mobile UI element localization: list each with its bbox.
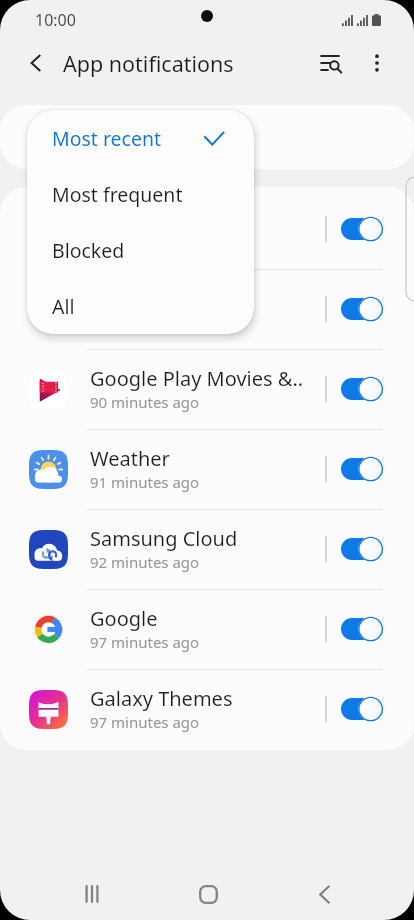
button[interactable]: Google xyxy=(0,589,414,669)
staticText: 10:00 xyxy=(35,9,76,31)
staticText: 90 minutes ago xyxy=(90,392,200,412)
staticText: 97 minutes ago xyxy=(90,632,200,652)
button[interactable]: Most recent xyxy=(27,110,254,166)
staticText: Blocked xyxy=(52,237,125,264)
button[interactable]: Samsung Cloud xyxy=(0,509,414,589)
staticText: 92 minutes ago xyxy=(90,552,200,572)
staticText: Weather xyxy=(90,445,170,472)
staticText: 97 minutes ago xyxy=(90,712,200,732)
button[interactable]: Notifications on xyxy=(339,374,385,404)
button[interactable]: Blocked xyxy=(27,222,254,278)
button[interactable]: Most frequent xyxy=(27,166,254,222)
button[interactable]: Recent apps xyxy=(70,872,114,916)
staticText: Most recent xyxy=(52,125,162,152)
button[interactable]: Notifications on xyxy=(339,214,385,244)
button[interactable]: Notifications on xyxy=(339,534,385,564)
button[interactable]: Galaxy Themes xyxy=(0,669,414,749)
button[interactable]: Home xyxy=(186,872,230,916)
staticText: App notifications xyxy=(63,49,234,78)
button[interactable]: Google Play Movies &.. xyxy=(0,349,414,429)
button[interactable]: Notifications on xyxy=(339,614,385,644)
staticText: 91 minutes ago xyxy=(90,472,200,492)
button[interactable]: Back xyxy=(302,872,346,916)
button[interactable]: Notifications on xyxy=(0,189,414,269)
button[interactable]: Weather xyxy=(0,429,414,509)
staticText: All xyxy=(52,293,75,320)
button[interactable]: More options xyxy=(355,41,399,85)
button[interactable]: Search xyxy=(309,41,353,85)
staticText: Galaxy Themes xyxy=(90,685,233,712)
staticText: Google Play Movies &.. xyxy=(90,365,304,392)
button[interactable]: Navigate up xyxy=(14,41,58,85)
button[interactable]: Notifications on xyxy=(339,694,385,724)
staticText: Google xyxy=(90,605,158,632)
staticText: Most frequent xyxy=(52,181,183,208)
button[interactable]: All xyxy=(27,278,254,334)
staticText: Samsung Cloud xyxy=(90,525,238,552)
button[interactable]: Notifications on xyxy=(339,294,385,324)
button[interactable]: Notifications on xyxy=(339,454,385,484)
button[interactable]: Notifications on xyxy=(0,269,414,349)
